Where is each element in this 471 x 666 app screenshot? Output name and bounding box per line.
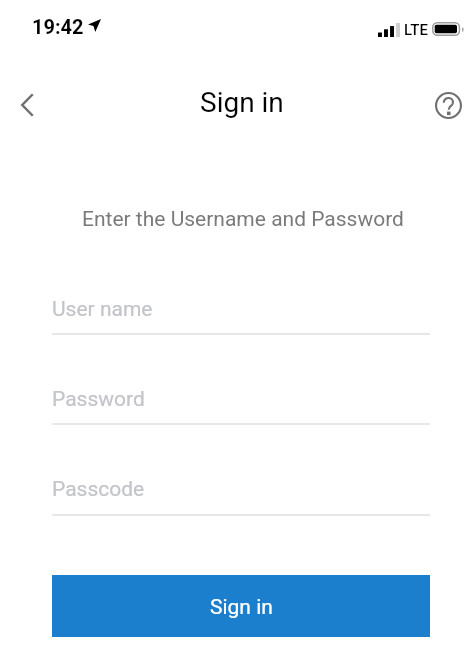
staticText: Passcode (52, 477, 145, 502)
staticText: Password (52, 387, 145, 412)
button[interactable]: Passcode (52, 477, 430, 516)
staticText: LTE (404, 21, 428, 39)
button[interactable]: Back (3, 81, 51, 129)
button[interactable]: User name (52, 297, 430, 335)
staticText: 19:42 (32, 15, 84, 38)
staticText: Sign in (210, 595, 273, 620)
button[interactable]: Help (428, 85, 468, 125)
staticText: Sign in (200, 86, 284, 119)
staticText: Enter the Username and Password (82, 207, 404, 232)
button[interactable]: Sign in (52, 575, 430, 637)
button[interactable]: Password (52, 387, 430, 425)
staticText: User name (52, 297, 153, 322)
